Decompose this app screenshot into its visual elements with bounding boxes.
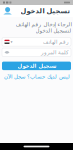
staticText: تسجيل الدخول: [17, 63, 56, 69]
button[interactable]: تسجيل الدخول: [2, 62, 71, 70]
button[interactable]: ▾: [2, 38, 71, 46]
staticText: تسجيل الدخول: [20, 7, 70, 15]
staticText: الرجاء إدخال رقم الهاتف لتسجيل الدخول: [15, 21, 71, 34]
button[interactable]: ليس لديك حساب؟ سجل الآن: [0, 74, 73, 80]
button[interactable]: كلمة المرور: [2, 48, 71, 57]
staticText: رقم الهاتف: [42, 39, 68, 45]
staticText: ▾: [10, 40, 12, 44]
staticText: ليس لديك حساب؟ سجل الآن: [3, 74, 69, 80]
staticText: كلمة المرور: [40, 49, 68, 55]
